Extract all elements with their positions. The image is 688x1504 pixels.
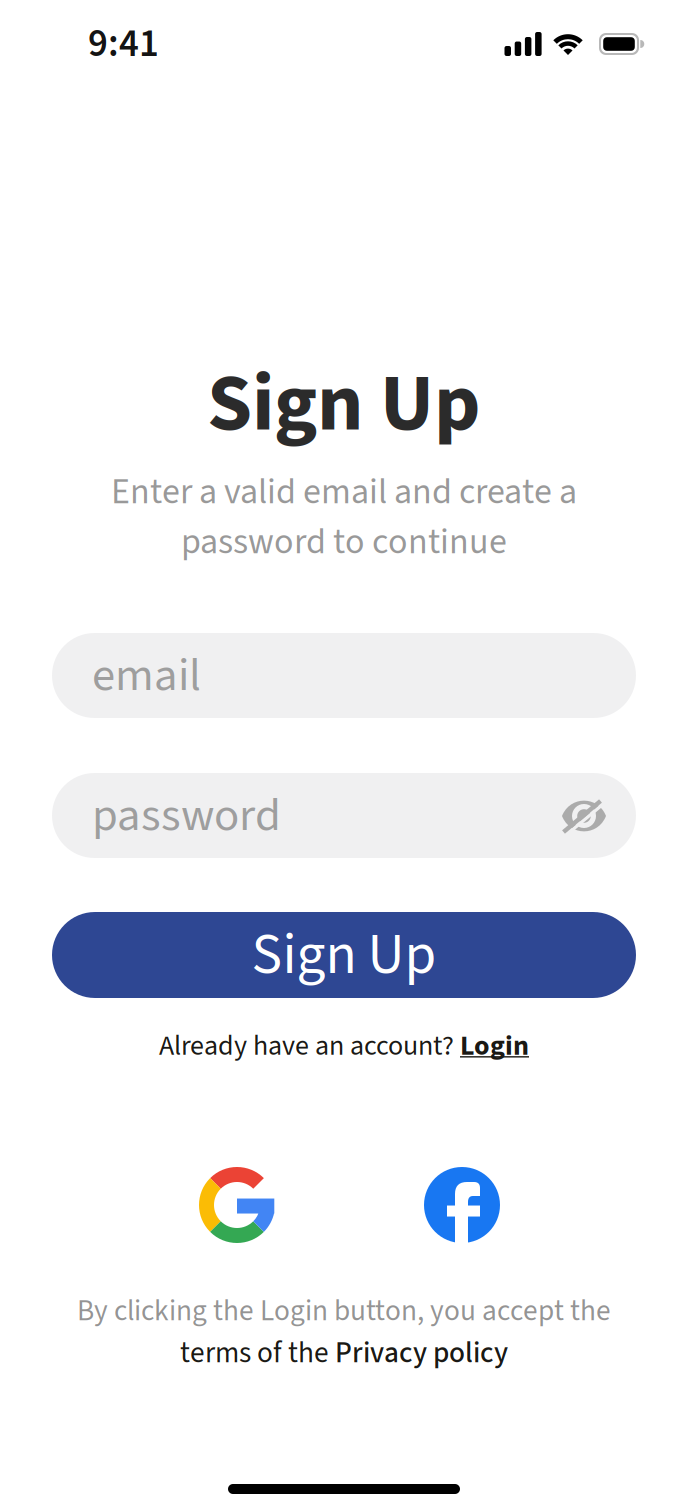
staticText: By clicking the Login button, you accept… (77, 1290, 611, 1332)
staticText: Enter a valid email and create a (111, 466, 577, 518)
staticText: Sign Up (207, 346, 481, 462)
staticText: email (92, 642, 201, 709)
staticText: password (92, 782, 281, 849)
staticText: password to continue (181, 516, 507, 568)
staticText: Already have an account? Login (159, 1027, 529, 1065)
staticText: Sign Up (251, 914, 436, 996)
staticText: terms of the Privacy policy (180, 1333, 508, 1373)
staticText: 9:41 (88, 16, 159, 72)
